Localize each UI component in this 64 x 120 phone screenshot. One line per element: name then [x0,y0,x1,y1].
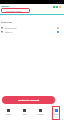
staticText: Express 15 [5,31,13,33]
staticText: Favourites [37,114,44,116]
button[interactable]: Express 15 [0,30,64,34]
button[interactable]: Cart [55,5,58,8]
button[interactable]: Browse [0,106,16,120]
staticText: Standard 30 min [5,27,17,29]
staticText: Continue to payment [18,99,40,102]
staticText: 9:41 [6,1,10,3]
staticText: Orders [22,114,27,116]
button[interactable]: Search [52,5,55,8]
button[interactable]: Notifications [58,5,61,8]
staticText: FoodDash [1,5,9,7]
button[interactable]: Favourites [32,106,48,120]
staticText: Add delivery address [6,10,22,12]
staticText: Account [54,114,59,116]
button[interactable]: Standard 30 min [0,26,64,30]
button[interactable]: Add delivery address [1,8,30,13]
staticText: Delivery time [1,21,13,23]
staticText: Browse [6,114,11,116]
button[interactable]: Continue to payment [2,96,55,104]
button[interactable]: Orders [16,106,32,120]
button[interactable]: Account [48,106,64,120]
